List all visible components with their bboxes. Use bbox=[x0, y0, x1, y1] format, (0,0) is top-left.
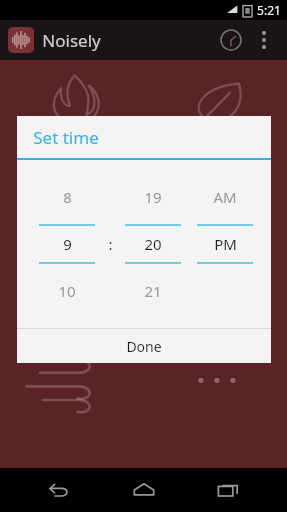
button[interactable]: 20 bbox=[117, 226, 189, 262]
button[interactable]: 9 bbox=[31, 226, 103, 262]
staticText: Set time bbox=[33, 126, 99, 149]
button[interactable]: Home bbox=[118, 468, 170, 512]
button[interactable]: 21 bbox=[117, 274, 189, 308]
staticText: 19 bbox=[144, 187, 162, 207]
button[interactable]: 19 bbox=[117, 180, 189, 214]
staticText: 9 bbox=[63, 234, 72, 254]
button[interactable]: AM bbox=[189, 180, 261, 214]
button[interactable]: Back bbox=[33, 468, 85, 512]
staticText: 10 bbox=[58, 281, 76, 301]
staticText: AM bbox=[213, 187, 237, 207]
button[interactable]: 8 bbox=[31, 180, 103, 214]
button[interactable]: PM bbox=[189, 226, 261, 262]
button[interactable]: 10 bbox=[31, 274, 103, 308]
staticText: 20 bbox=[144, 234, 162, 254]
staticText: : bbox=[108, 234, 113, 254]
staticText: Noisely bbox=[42, 29, 101, 52]
staticText: 5:21 bbox=[257, 2, 281, 18]
staticText: 21 bbox=[144, 281, 162, 301]
staticText: 8 bbox=[63, 187, 72, 207]
staticText: Done bbox=[126, 337, 162, 356]
staticText: PM bbox=[214, 234, 237, 254]
button[interactable]: Done bbox=[17, 329, 271, 363]
button[interactable]: Recent apps bbox=[202, 468, 254, 512]
button[interactable]: More options bbox=[249, 25, 279, 55]
button[interactable]: Timer bbox=[213, 22, 249, 58]
